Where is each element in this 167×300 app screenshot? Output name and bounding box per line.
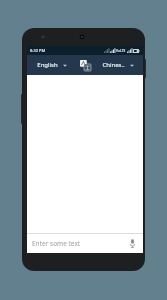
staticText: VoLTE xyxy=(116,49,126,53)
button[interactable]: Chines.. xyxy=(93,55,143,75)
staticText: Chines.. xyxy=(102,61,125,69)
staticText: English xyxy=(37,61,58,69)
staticText: 8:33 PM xyxy=(30,48,46,53)
button[interactable]: Swap languages xyxy=(77,57,93,73)
staticText: Enter some text xyxy=(32,239,127,248)
button[interactable]: Voice input xyxy=(127,238,138,249)
button[interactable]: English xyxy=(27,55,77,75)
button[interactable]: Enter some text xyxy=(27,234,143,253)
